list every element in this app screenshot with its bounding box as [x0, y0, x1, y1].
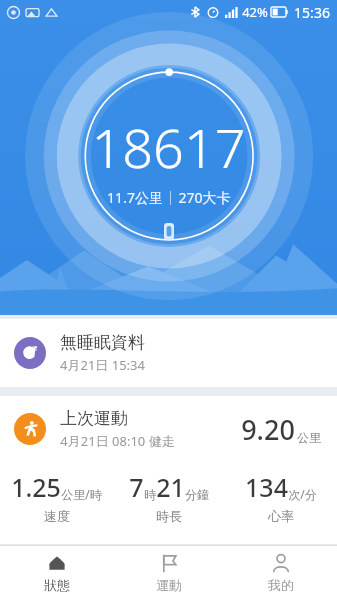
staticText: 42% — [242, 3, 268, 21]
button[interactable]: 我的 — [225, 546, 337, 600]
button[interactable]: 134 — [225, 470, 337, 524]
staticText: 公里 — [297, 430, 321, 445]
staticText: 狀態 — [44, 577, 70, 593]
staticText: 4月21日 08:10 健走 — [60, 432, 175, 450]
staticText: 18617 — [91, 110, 246, 184]
staticText: 分鐘 — [185, 487, 209, 502]
staticText: 速度 — [44, 508, 70, 524]
button[interactable]: 狀態 — [0, 546, 113, 600]
staticText: 上次運動 — [60, 408, 128, 429]
staticText: 心率 — [268, 508, 294, 524]
staticText: 270大卡 — [178, 188, 231, 207]
staticText: 時長 — [156, 508, 182, 524]
staticText: 時 — [144, 487, 156, 502]
staticText: 7 — [129, 470, 144, 504]
button[interactable]: 運動 — [113, 546, 225, 600]
staticText: 次/分 — [288, 486, 317, 502]
staticText: 21 — [156, 470, 185, 504]
staticText: 134 — [245, 470, 288, 504]
staticText: 無睡眠資料 — [60, 332, 145, 353]
staticText: 9.20 — [241, 411, 295, 448]
button[interactable]: 7 — [113, 470, 225, 524]
staticText: 15:36 — [294, 3, 330, 22]
staticText: 我的 — [268, 577, 294, 593]
staticText: 4月21日 15:34 — [60, 356, 145, 374]
staticText: 11.7公里 — [107, 188, 163, 207]
button[interactable]: 1.25 — [0, 470, 113, 524]
staticText: 1.25 — [11, 470, 61, 504]
staticText: 公里/時 — [61, 486, 102, 502]
button[interactable]: 上次運動 — [0, 396, 337, 462]
staticText: 運動 — [156, 577, 182, 593]
button[interactable]: 無睡眠資料 — [0, 319, 337, 387]
